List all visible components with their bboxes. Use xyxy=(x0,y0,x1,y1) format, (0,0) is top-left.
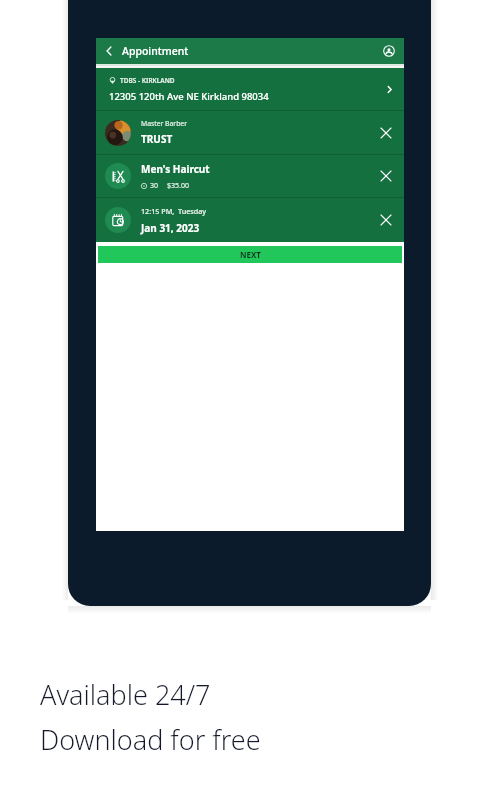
staticText: TRUST xyxy=(141,132,173,146)
staticText: TDBS - KIRKLAND xyxy=(120,76,175,85)
button[interactable]: NEXT xyxy=(98,246,402,263)
button[interactable]: Change location xyxy=(376,76,402,102)
staticText: Appointment xyxy=(122,44,189,58)
staticText: $35.00 xyxy=(167,181,189,191)
button[interactable]: Remove xyxy=(372,119,400,147)
button[interactable]: Remove xyxy=(372,162,400,190)
button[interactable]: Back xyxy=(96,38,122,64)
button[interactable]: Remove xyxy=(372,206,400,234)
staticText: NEXT xyxy=(240,249,261,260)
button[interactable]: Men's Haircut xyxy=(96,155,404,197)
staticText: 30 xyxy=(150,181,159,191)
button[interactable]: 12:15 PM, Tuesday xyxy=(96,198,404,242)
staticText: 12305 120th Ave NE Kirkland 98034 xyxy=(109,90,269,103)
staticText: Men's Haircut xyxy=(141,162,210,176)
button[interactable]: Master Barber xyxy=(96,111,404,154)
button[interactable]: TDBS - KIRKLAND xyxy=(96,68,404,110)
staticText: Jan 31, 2023 xyxy=(141,221,200,235)
button[interactable]: Profile xyxy=(376,38,402,64)
staticText: Master Barber xyxy=(141,119,187,128)
staticText: Download for free xyxy=(40,721,261,758)
staticText: 12:15 PM, Tuesday xyxy=(141,206,207,216)
staticText: Available 24/7 xyxy=(40,676,211,713)
